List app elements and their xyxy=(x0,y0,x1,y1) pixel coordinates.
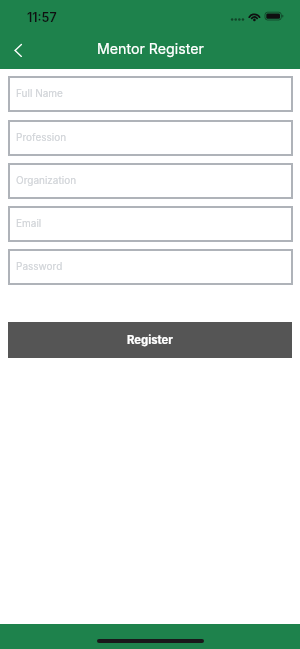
staticText: Register xyxy=(127,333,173,347)
button[interactable]: Password xyxy=(8,249,293,285)
staticText: Mentor Register xyxy=(97,40,204,57)
staticText: Profession xyxy=(16,131,67,143)
staticText: Organization xyxy=(16,174,77,186)
staticText: Full Name xyxy=(16,87,63,99)
staticText: 11:57 xyxy=(27,10,57,25)
button[interactable]: Register xyxy=(8,322,292,358)
button[interactable]: Organization xyxy=(8,163,293,199)
button[interactable]: Full Name xyxy=(8,76,293,112)
staticText: Email xyxy=(16,217,42,229)
button[interactable]: Back xyxy=(0,32,38,69)
button[interactable]: Email xyxy=(8,206,293,242)
staticText: Password xyxy=(16,260,63,272)
button[interactable]: Profession xyxy=(8,120,293,156)
